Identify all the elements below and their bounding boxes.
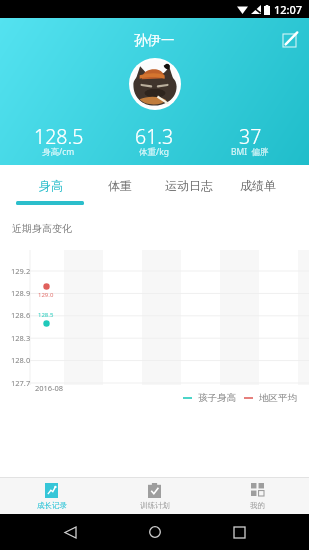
staticText: 体重/kg bbox=[139, 146, 169, 158]
staticText: 61.3 bbox=[135, 123, 174, 150]
staticText: 37 bbox=[239, 123, 262, 150]
staticText: 孙伊一 bbox=[134, 32, 175, 49]
button[interactable]: 我的 bbox=[206, 478, 309, 514]
staticText: 2016-08 bbox=[35, 383, 64, 393]
staticText: 训练计划 bbox=[140, 501, 170, 510]
staticText: 身高 bbox=[39, 178, 63, 193]
staticText: 运动日志 bbox=[165, 178, 213, 193]
button[interactable]: 61.3 bbox=[106, 123, 202, 162]
button[interactable]: 成长记录 bbox=[0, 478, 103, 514]
staticText: 成绩单 bbox=[240, 178, 276, 193]
button[interactable] bbox=[129, 58, 181, 110]
staticText: 体重 bbox=[108, 178, 132, 193]
button[interactable]: 运动日志 bbox=[154, 165, 223, 205]
staticText: 孩子身高 bbox=[198, 392, 236, 404]
staticText: 128.0 bbox=[11, 355, 31, 365]
staticText: 我的 bbox=[250, 501, 265, 510]
button[interactable]: 身高 bbox=[16, 165, 85, 205]
staticText: BMI 偏胖 bbox=[231, 146, 269, 158]
button[interactable]: Recent apps bbox=[225, 518, 253, 546]
staticText: 128.6 bbox=[11, 310, 31, 320]
button[interactable]: 128.5 bbox=[11, 123, 106, 162]
staticText: 128.5 bbox=[38, 311, 54, 319]
staticText: 128.5 bbox=[34, 123, 84, 150]
staticText: 129.2 bbox=[11, 266, 31, 276]
staticText: 近期身高变化 bbox=[12, 222, 72, 235]
staticText: 地区平均 bbox=[259, 392, 297, 404]
button[interactable]: 37 bbox=[202, 123, 298, 162]
staticText: 成长记录 bbox=[37, 501, 67, 510]
button[interactable]: 体重 bbox=[85, 165, 154, 205]
staticText: 127.7 bbox=[11, 378, 31, 388]
staticText: 身高/cm bbox=[42, 146, 75, 158]
button[interactable]: 成绩单 bbox=[223, 165, 292, 205]
staticText: 128.9 bbox=[11, 288, 31, 298]
staticText: 129.0 bbox=[38, 291, 54, 299]
staticText: 128.3 bbox=[11, 333, 31, 343]
button[interactable]: Home bbox=[141, 518, 169, 546]
button[interactable]: Edit profile bbox=[276, 27, 302, 53]
staticText: 12:07 bbox=[274, 2, 303, 17]
button[interactable]: 训练计划 bbox=[103, 478, 206, 514]
button[interactable]: Back bbox=[56, 518, 84, 546]
